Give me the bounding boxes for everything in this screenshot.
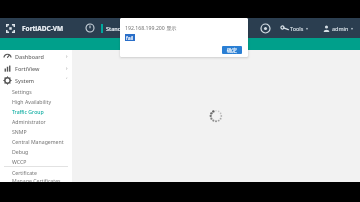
staticText: FortiView — [15, 65, 40, 72]
staticText: admin — [332, 25, 349, 32]
staticText: Certificate — [12, 169, 37, 176]
staticText: 确定 — [227, 47, 237, 53]
staticText: Dashboard — [15, 53, 44, 60]
button[interactable]: Notifications — [238, 22, 251, 35]
staticText: Debug — [12, 148, 29, 155]
staticText: Administrator — [12, 118, 46, 125]
staticText: Central Management — [12, 138, 64, 145]
staticText: FortiADC-VM — [22, 24, 64, 33]
staticText: › — [66, 53, 68, 60]
staticText: WCCP — [12, 158, 27, 165]
staticText: System — [15, 77, 35, 84]
button[interactable]: Traffic Group — [0, 106, 72, 116]
button[interactable]: Central Management — [0, 136, 72, 146]
button[interactable]: Dashboard — [0, 50, 72, 62]
button[interactable]: WCCP — [0, 156, 72, 166]
button[interactable]: FortiView — [0, 62, 72, 74]
button[interactable]: Administrator — [0, 116, 72, 126]
staticText: Standalone — [106, 25, 136, 32]
button[interactable]: admin — [322, 25, 355, 32]
staticText: Settings — [12, 88, 32, 95]
staticText: Tools — [290, 25, 304, 32]
staticText: Manage Certificates — [12, 177, 61, 182]
button[interactable]: Status — [84, 22, 96, 34]
staticText: Traffic Group — [12, 108, 44, 115]
staticText: fail — [126, 34, 134, 41]
button[interactable]: Help — [259, 22, 272, 35]
button[interactable]: Debug — [0, 146, 72, 156]
button[interactable]: Certificate — [0, 167, 72, 177]
button[interactable]: SNMP — [0, 126, 72, 136]
staticText: SNMP — [12, 128, 27, 135]
staticText: › — [66, 65, 68, 72]
button[interactable]: High Availability — [0, 96, 72, 106]
button[interactable]: Tools — [280, 25, 310, 32]
staticText: High Availability — [12, 98, 52, 105]
button[interactable]: Manage Certificates — [0, 177, 72, 182]
staticText: ˅ — [66, 77, 68, 84]
button[interactable]: Home — [5, 23, 16, 34]
button[interactable]: Standalone — [106, 25, 136, 32]
button[interactable]: System — [0, 74, 72, 86]
staticText: 192.168.199.200 显示 — [125, 24, 177, 31]
button[interactable]: 确定 — [222, 46, 242, 54]
staticText: ▾ — [306, 26, 309, 31]
staticText: ▾ — [351, 26, 354, 31]
button[interactable]: Settings — [0, 86, 72, 96]
